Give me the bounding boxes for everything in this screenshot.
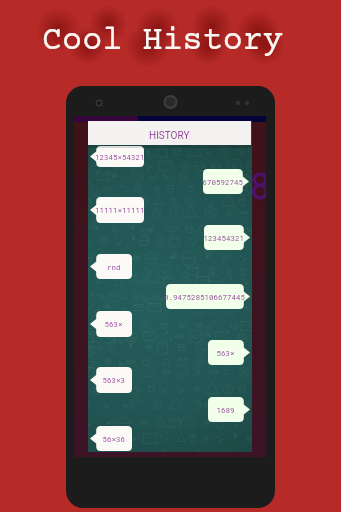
button[interactable] bbox=[0, 0, 341, 512]
